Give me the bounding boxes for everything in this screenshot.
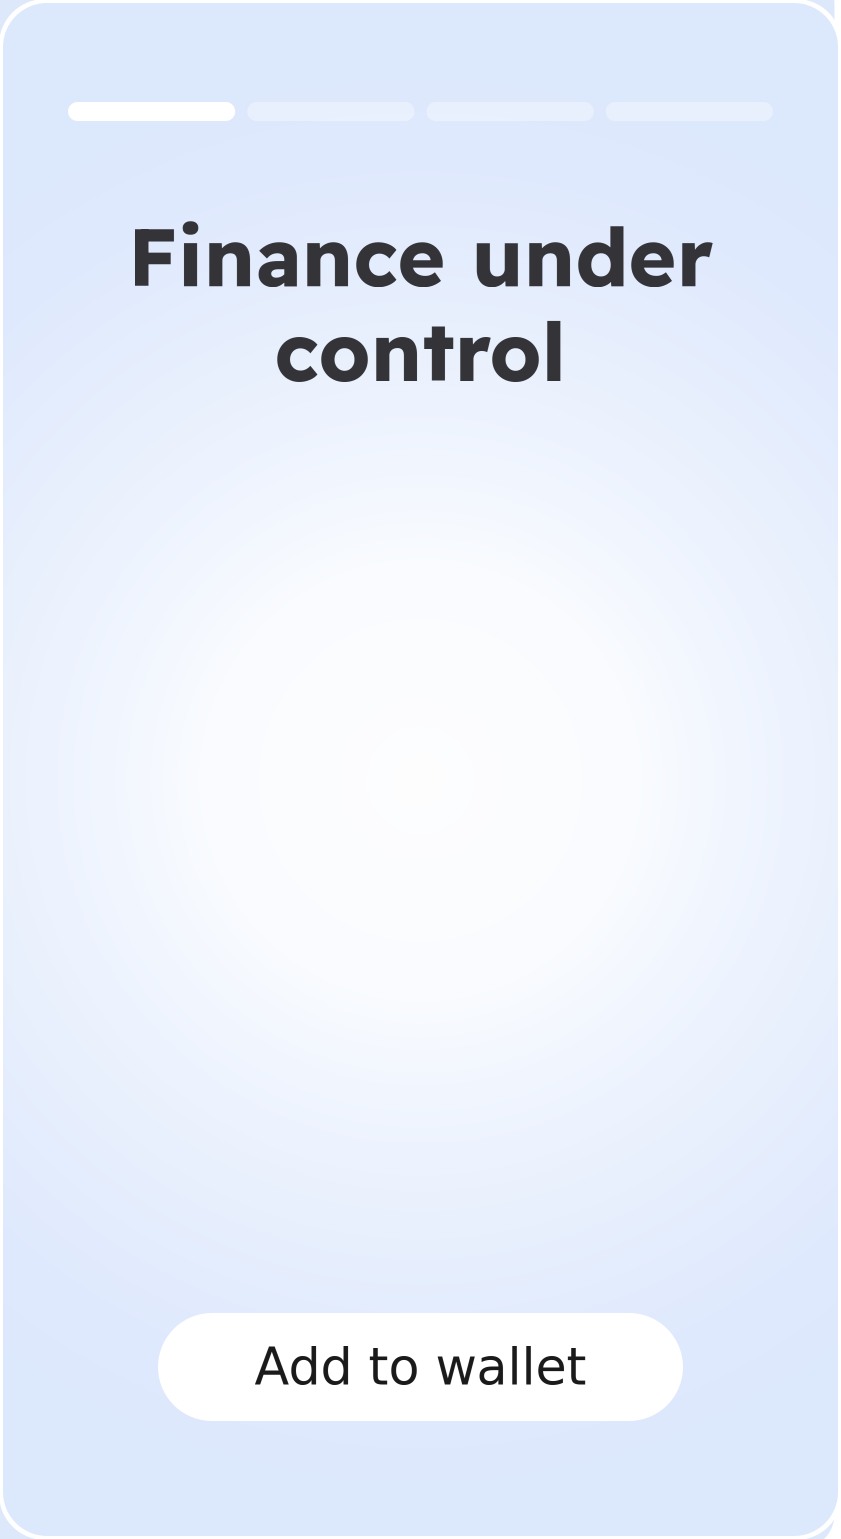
staticText: Finance under [127,205,713,307]
button[interactable]: Add to wallet [158,1313,683,1421]
staticText: Add to wallet [254,1337,586,1396]
staticText: control [274,300,566,401]
